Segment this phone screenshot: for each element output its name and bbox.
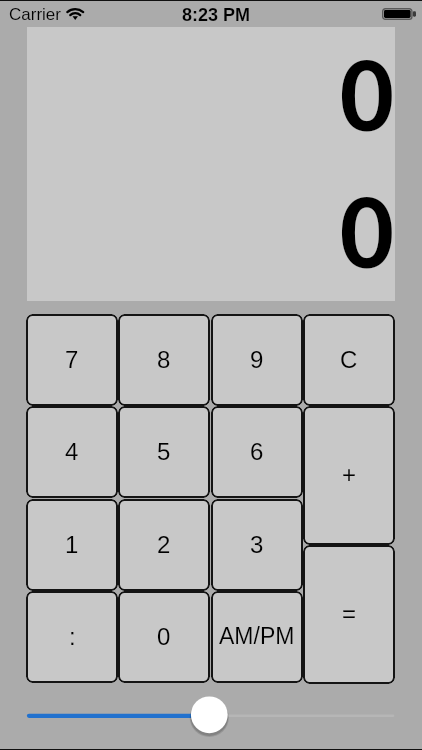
button[interactable]: 9 <box>211 314 303 406</box>
staticText: 8 <box>157 346 171 373</box>
staticText: 7 <box>65 346 79 373</box>
button[interactable]: C <box>303 314 395 406</box>
button[interactable]: + <box>303 406 395 545</box>
button[interactable]: 4 <box>26 406 118 498</box>
staticText: 0 <box>27 29 394 160</box>
button[interactable]: 1 <box>26 499 118 591</box>
button[interactable]: 2 <box>118 499 210 591</box>
button[interactable]: AM/PM <box>211 591 303 683</box>
staticText: 5 <box>157 438 171 465</box>
staticText: C <box>340 346 358 373</box>
staticText: 1 <box>65 531 79 558</box>
button[interactable]: = <box>303 545 395 684</box>
button[interactable]: 3 <box>211 499 303 591</box>
button[interactable]: : <box>26 591 118 683</box>
staticText: 2 <box>157 531 171 558</box>
button[interactable]: Volume slider <box>25 692 397 740</box>
staticText: 0 <box>27 166 394 297</box>
staticText: Carrier <box>9 5 61 24</box>
staticText: 9 <box>250 346 264 373</box>
staticText: = <box>342 600 357 627</box>
staticText: 0 <box>157 623 171 650</box>
button[interactable]: 5 <box>118 406 210 498</box>
button[interactable]: 8 <box>118 314 210 406</box>
staticText: 3 <box>250 531 264 558</box>
other: Wi-Fi <box>67 6 85 21</box>
button[interactable]: 0 <box>118 591 210 683</box>
button[interactable]: 7 <box>26 314 118 406</box>
staticText: : <box>69 623 76 650</box>
staticText: AM/PM <box>219 623 295 649</box>
other: Battery <box>382 8 416 20</box>
button[interactable]: 6 <box>211 406 303 498</box>
staticText: 6 <box>250 438 264 465</box>
staticText: 4 <box>65 438 79 465</box>
staticText: 8:23 PM <box>182 5 251 25</box>
staticText: + <box>342 461 357 488</box>
